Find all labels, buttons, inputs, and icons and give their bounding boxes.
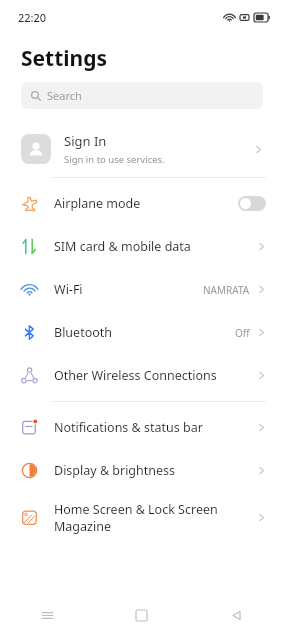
- button[interactable]: Display & brightness: [0, 449, 284, 492]
- button[interactable]: SIM card & mobile data: [0, 225, 284, 268]
- button[interactable]: Wi-Fi: [0, 268, 284, 311]
- staticText: Bluetooth: [54, 324, 235, 341]
- button[interactable]: Recents: [0, 600, 94, 630]
- button[interactable]: Back: [189, 600, 284, 630]
- staticText: Off: [235, 326, 250, 340]
- staticText: SIM card & mobile data: [54, 238, 257, 255]
- staticText: Settings: [21, 44, 108, 73]
- button[interactable]: Notifications & status bar: [0, 406, 284, 449]
- button[interactable]: Bluetooth: [0, 311, 284, 354]
- staticText: Sign in to use services.: [64, 153, 165, 166]
- staticText: Home Screen & Lock Screen Magazine: [54, 501, 257, 534]
- button[interactable]: Airplane mode toggle: [238, 196, 266, 211]
- staticText: Sign In: [64, 132, 107, 150]
- staticText: NAMRATA: [203, 283, 250, 297]
- button[interactable]: Airplane mode: [0, 182, 284, 225]
- staticText: Search: [47, 88, 82, 103]
- staticText: 22:20: [18, 10, 47, 25]
- staticText: Other Wireless Connections: [54, 367, 257, 384]
- button[interactable]: Search: [21, 82, 263, 109]
- staticText: Display & brightness: [54, 462, 257, 479]
- button[interactable]: Other Wireless Connections: [0, 354, 284, 397]
- button[interactable]: Home Screen & Lock Screen Magazine: [0, 492, 284, 542]
- staticText: Airplane mode: [54, 195, 238, 212]
- staticText: Notifications & status bar: [54, 419, 257, 436]
- button[interactable]: Home: [94, 600, 189, 630]
- staticText: Wi-Fi: [54, 281, 203, 298]
- button[interactable]: Sign In: [0, 121, 284, 177]
